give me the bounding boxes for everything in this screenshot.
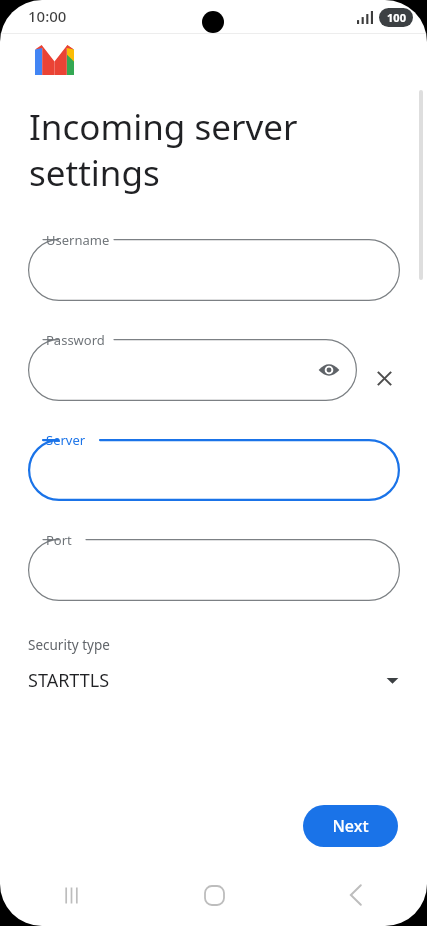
staticText: Port	[46, 531, 72, 549]
button[interactable]: Show password	[314, 355, 344, 385]
staticText: 100	[387, 10, 406, 25]
button[interactable]: Username	[28, 239, 400, 301]
button[interactable]: Password	[28, 339, 357, 401]
staticText: 10:00	[28, 6, 67, 26]
staticText: Username	[46, 231, 110, 249]
staticText: Next	[332, 815, 369, 837]
button[interactable]: Next	[303, 805, 398, 847]
staticText: STARTTLS	[28, 668, 386, 693]
staticText: Incoming server settings	[29, 103, 298, 196]
button[interactable]: Clear password	[369, 363, 399, 393]
staticText: Security type	[28, 636, 110, 654]
staticText: Password	[46, 331, 105, 349]
button[interactable]: Back	[285, 864, 427, 926]
button[interactable]: Recent apps	[0, 864, 143, 926]
button[interactable]: Port	[28, 539, 400, 601]
button[interactable]: Security type	[28, 636, 399, 693]
button[interactable]: Server	[28, 439, 400, 501]
staticText: Server	[46, 431, 86, 449]
button[interactable]: Home	[143, 864, 285, 926]
